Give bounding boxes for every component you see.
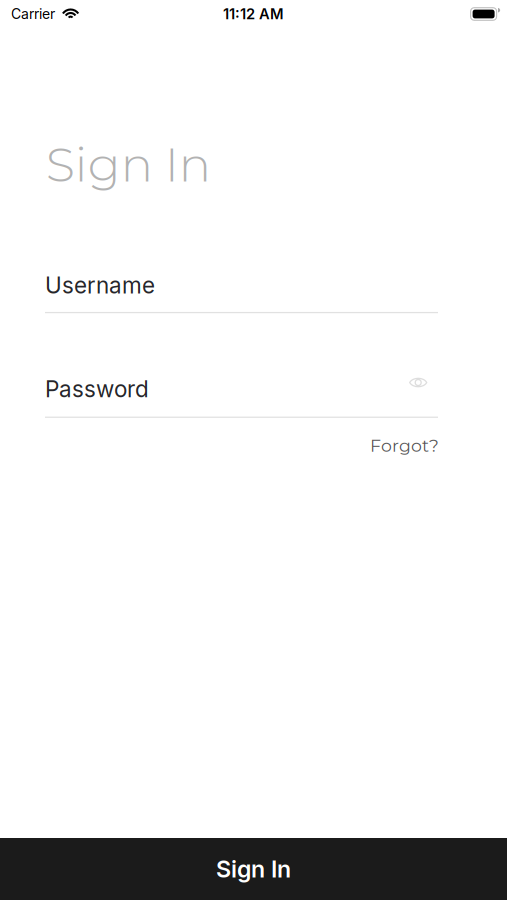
staticText: Sign In: [216, 855, 291, 883]
staticText: Username: [45, 271, 155, 299]
staticText: Carrier: [11, 5, 55, 22]
button[interactable]: Username: [0, 271, 507, 313]
staticText: 11:12 AM: [223, 5, 284, 23]
button[interactable]: Sign In: [0, 838, 507, 900]
button[interactable]: Show password: [403, 369, 433, 395]
staticText: Sign In: [46, 135, 211, 193]
staticText: Forgot?: [370, 435, 439, 456]
staticText: Password: [45, 375, 149, 403]
button[interactable]: Password: [0, 375, 507, 418]
button[interactable]: Forgot?: [370, 435, 439, 456]
